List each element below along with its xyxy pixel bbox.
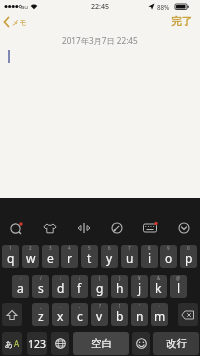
staticText: 8 [148, 245, 151, 251]
staticText: c [77, 308, 83, 324]
staticText: au [21, 3, 29, 11]
button[interactable] [76, 220, 92, 236]
staticText: ; [79, 275, 81, 281]
staticText: / [40, 275, 42, 281]
button[interactable] [178, 303, 198, 326]
staticText: A [14, 338, 20, 349]
staticText: 22:45 [91, 2, 109, 12]
staticText: z [38, 308, 44, 324]
button[interactable]: 6 [101, 245, 118, 268]
staticText: 1 [9, 245, 12, 251]
staticText: ( [99, 275, 101, 281]
staticText: s [38, 280, 44, 296]
button[interactable]: あ [2, 332, 22, 355]
staticText: 9 [167, 245, 170, 251]
staticText: ' [139, 303, 141, 309]
staticText: メモ [12, 18, 27, 27]
button[interactable]: ) [111, 275, 128, 298]
staticText: w [26, 250, 36, 266]
staticText: 5 [88, 245, 91, 251]
button[interactable] [8, 220, 24, 236]
button[interactable]: - [12, 275, 29, 298]
staticText: - [20, 275, 22, 281]
staticText: , [79, 303, 81, 309]
button[interactable]: 5 [81, 245, 98, 268]
button[interactable] [132, 332, 150, 355]
staticText: p [185, 250, 193, 266]
button[interactable]: 4 [61, 245, 78, 268]
staticText: 123 [28, 337, 47, 351]
staticText: t [87, 250, 92, 266]
staticText: 改行 [166, 337, 187, 350]
button[interactable]: ' [131, 303, 148, 326]
staticText: ! [119, 303, 121, 309]
staticText: 3 [49, 245, 52, 251]
staticText: ¥ [138, 275, 141, 281]
button[interactable]: 8 [141, 245, 158, 268]
staticText: ) [119, 275, 121, 281]
button[interactable] [51, 332, 69, 355]
staticText: . [60, 303, 62, 309]
button[interactable]: 7 [121, 245, 138, 268]
button[interactable]: ¥ [131, 275, 148, 298]
button[interactable]: @ [170, 275, 187, 298]
staticText: 6 [108, 245, 111, 251]
button[interactable]: ? [91, 303, 108, 326]
staticText: & [157, 275, 161, 281]
staticText: f [77, 280, 82, 296]
button[interactable]: 完了 [171, 15, 192, 28]
staticText: : [60, 275, 62, 281]
staticText: l [177, 280, 181, 296]
button[interactable]: & [150, 275, 167, 298]
staticText: _ [40, 303, 42, 309]
button[interactable]: 123 [27, 332, 47, 355]
button[interactable]: , [71, 303, 88, 326]
staticText: r [67, 250, 72, 266]
button[interactable]: 改行 [153, 332, 199, 355]
staticText: 0 [187, 245, 190, 251]
button[interactable]: ! [111, 303, 128, 326]
staticText: n [136, 308, 144, 324]
button[interactable]: : [52, 275, 69, 298]
staticText: h [116, 280, 124, 296]
button[interactable] [142, 220, 158, 236]
staticText: ? [99, 303, 101, 309]
staticText: o [165, 250, 173, 266]
staticText: i [148, 250, 152, 266]
staticText: v [96, 308, 103, 324]
button[interactable]: ( [91, 275, 108, 298]
button[interactable]: . [52, 303, 69, 326]
button[interactable] [42, 220, 58, 236]
button[interactable]: · [151, 303, 168, 326]
button[interactable]: 9 [160, 245, 177, 268]
staticText: 88% [157, 3, 170, 11]
staticText: あ [5, 339, 14, 349]
button[interactable]: _ [32, 303, 49, 326]
staticText: 2 [29, 245, 32, 251]
staticText: a [17, 280, 24, 296]
staticText: u [126, 250, 134, 266]
staticText: 空白 [91, 337, 112, 350]
button[interactable]: 空白 [73, 332, 129, 355]
staticText: x [57, 308, 64, 324]
button[interactable]: 3 [42, 245, 59, 268]
button[interactable]: 1 [2, 245, 19, 268]
staticText: d [57, 280, 65, 296]
button[interactable] [2, 303, 22, 326]
button[interactable]: ; [71, 275, 88, 298]
staticText: b [116, 308, 124, 324]
staticText: · [159, 303, 161, 309]
button[interactable]: メモ [3, 16, 27, 28]
button[interactable]: 2 [22, 245, 39, 268]
staticText: m [154, 308, 166, 324]
button[interactable]: / [32, 275, 49, 298]
staticText: q [7, 250, 15, 266]
staticText: @ [176, 275, 181, 281]
button[interactable] [176, 220, 192, 236]
staticText: g [96, 280, 104, 296]
button[interactable]: 0 [180, 245, 197, 268]
button[interactable] [109, 220, 125, 236]
staticText: k [155, 280, 162, 296]
staticText: 7 [128, 245, 131, 251]
staticText: y [106, 250, 113, 266]
